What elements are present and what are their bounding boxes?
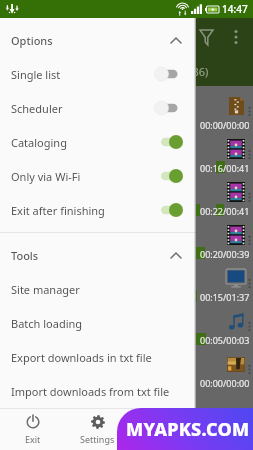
staticText: Site manager [11, 282, 80, 297]
staticText: Scheduler [11, 101, 63, 116]
staticText: Options [11, 33, 53, 48]
staticText: 0 (36) [180, 64, 209, 79]
staticText: Tools [11, 248, 39, 263]
staticText: 00:20/00:39 [200, 248, 250, 260]
button[interactable]: Exit after finishing [0, 193, 196, 227]
staticText: Only via Wi-Fi [11, 169, 81, 184]
staticText: 00:16/00:41 [200, 162, 250, 174]
button[interactable]: Site manager [0, 272, 196, 306]
button[interactable]: Cataloging [0, 125, 196, 159]
button[interactable]: Export downloads in txt file [0, 340, 196, 374]
button[interactable]: Scheduler [0, 91, 196, 125]
staticText: 14:47 [222, 2, 248, 16]
staticText: Settings [80, 433, 115, 445]
staticText: 00:15/01:37 [200, 291, 250, 303]
button[interactable]: Filter [191, 22, 221, 52]
button[interactable]: Tools [0, 238, 196, 272]
staticText: 00:00/00:00 [200, 377, 250, 389]
staticText: Single list [11, 67, 61, 82]
button[interactable]: Exit [0, 409, 65, 450]
staticText: Import downloads from txt file [11, 384, 170, 399]
staticText: 00:22/00:41 [200, 205, 250, 217]
staticText: MYAPKS.COM [126, 417, 250, 442]
button[interactable]: More options [221, 22, 251, 52]
staticText: Batch loading [11, 316, 83, 331]
button[interactable]: Import downloads from txt file [0, 374, 196, 408]
staticText: Exit [25, 433, 41, 445]
button[interactable]: Batch loading [0, 306, 196, 340]
staticText: Exit after finishing [11, 203, 105, 218]
staticText: 00:05/00:03 [200, 334, 250, 346]
button[interactable]: Only via Wi-Fi [0, 159, 196, 193]
staticText: 00:00/00:00 [200, 119, 250, 131]
button[interactable]: Settings [65, 409, 130, 450]
button[interactable]: Single list [0, 57, 196, 91]
staticText: Cataloging [11, 135, 67, 150]
button[interactable]: Options [0, 23, 196, 57]
staticText: Export downloads in txt file [11, 350, 152, 365]
